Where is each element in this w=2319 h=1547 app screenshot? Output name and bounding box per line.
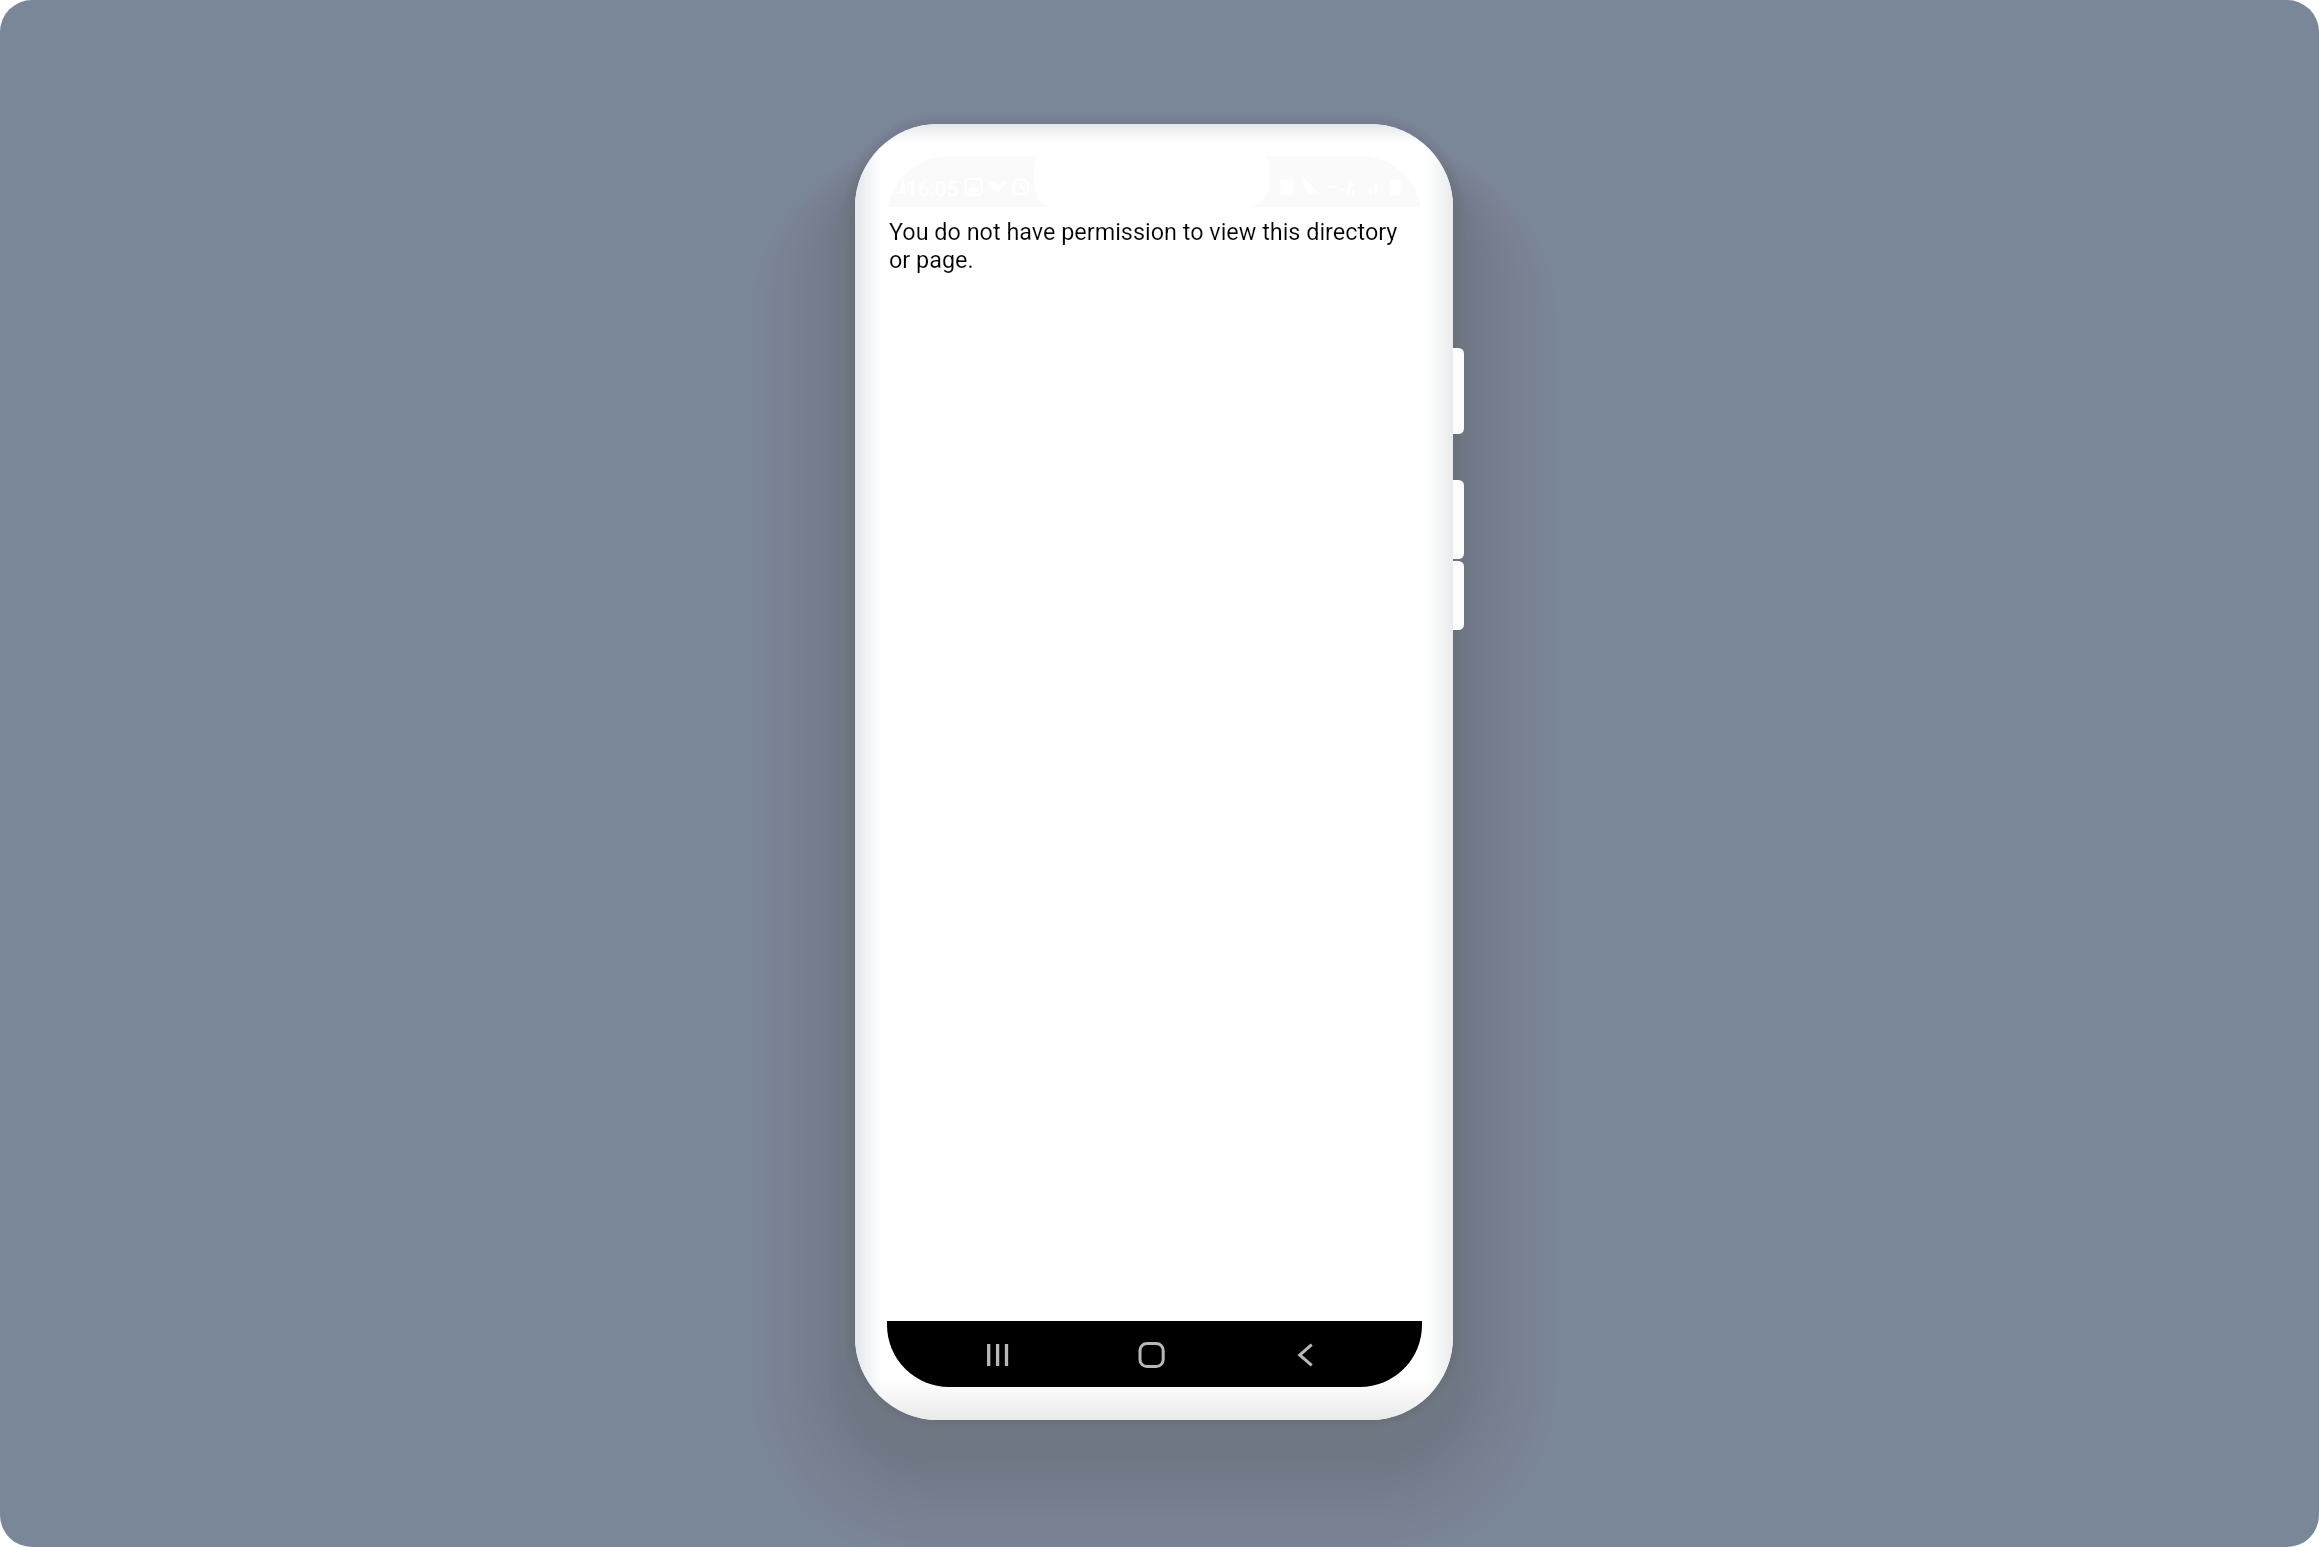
button[interactable]: Home	[1075, 1321, 1228, 1387]
staticText: You do not have permission to view this …	[889, 218, 1424, 274]
button[interactable]: Recent apps	[921, 1321, 1074, 1387]
button[interactable]: Back	[1229, 1321, 1382, 1387]
